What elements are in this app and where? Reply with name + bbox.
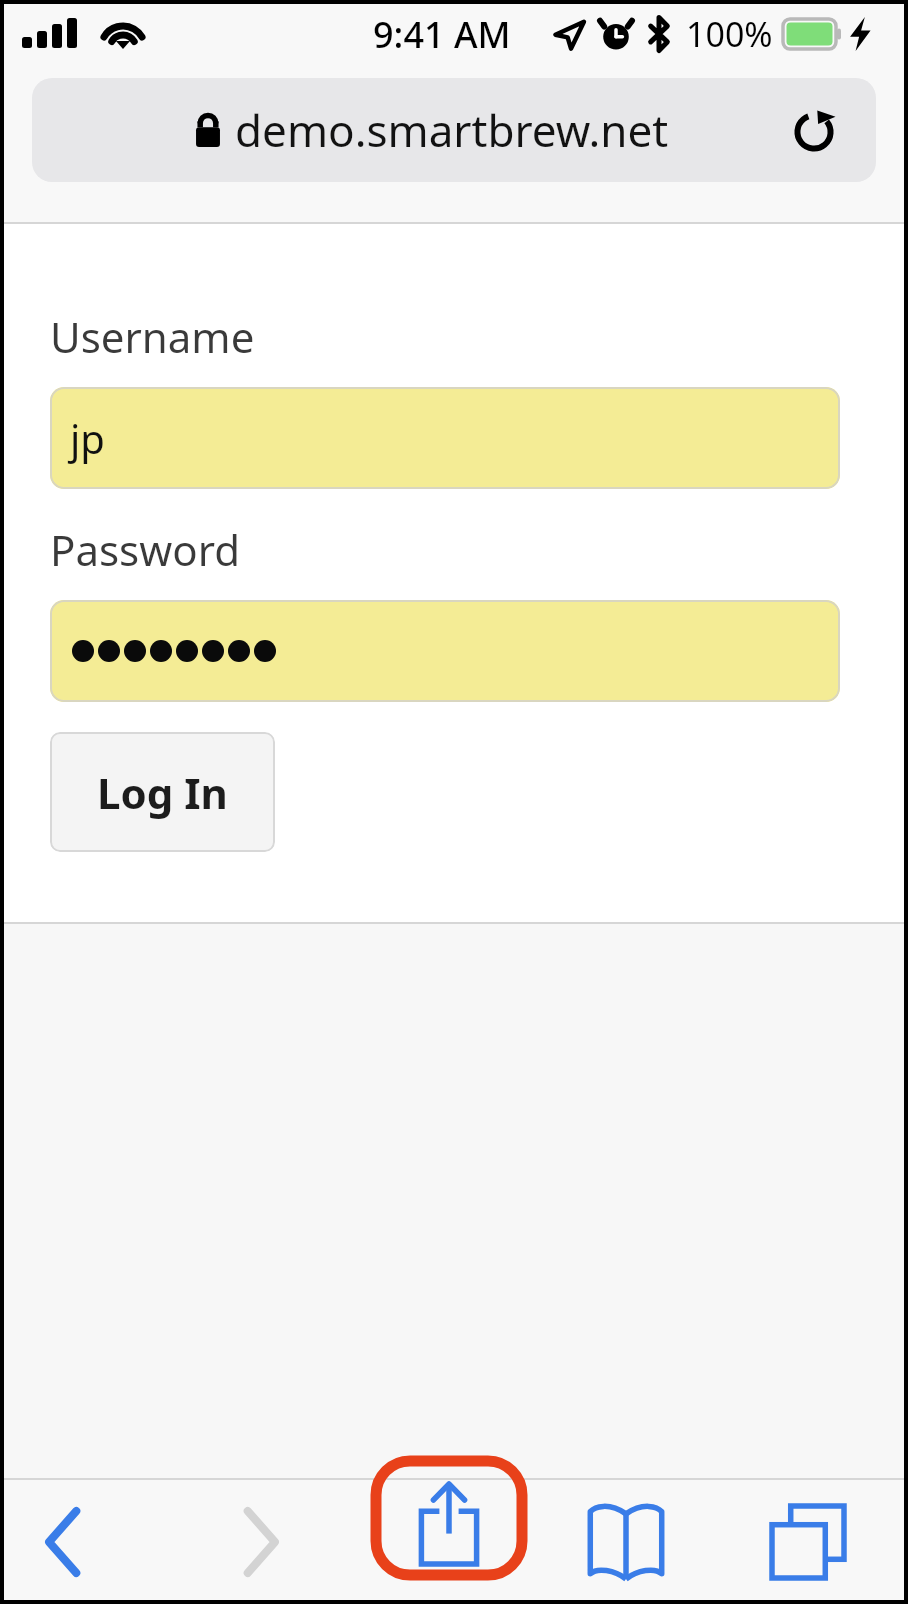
button[interactable]: demo.smartbrew.net xyxy=(32,78,876,182)
staticText: jp xyxy=(70,411,105,465)
staticText: 100% xyxy=(686,11,773,57)
button[interactable]: Back xyxy=(18,1487,110,1597)
button[interactable]: jp xyxy=(50,387,840,489)
button[interactable]: Bookmarks xyxy=(578,1487,674,1597)
button[interactable]: Forward xyxy=(214,1487,306,1597)
button[interactable]: Reload xyxy=(786,102,842,158)
button[interactable]: Tabs xyxy=(760,1487,856,1597)
button[interactable]: Log In xyxy=(50,732,275,852)
button[interactable] xyxy=(50,600,840,702)
button[interactable]: Share xyxy=(371,1456,527,1580)
staticText: 9:41 AM xyxy=(373,10,511,59)
staticText: Username xyxy=(50,308,255,365)
staticText: demo.smartbrew.net xyxy=(235,100,669,160)
staticText: Log In xyxy=(97,764,228,821)
staticText: Password xyxy=(50,521,240,578)
